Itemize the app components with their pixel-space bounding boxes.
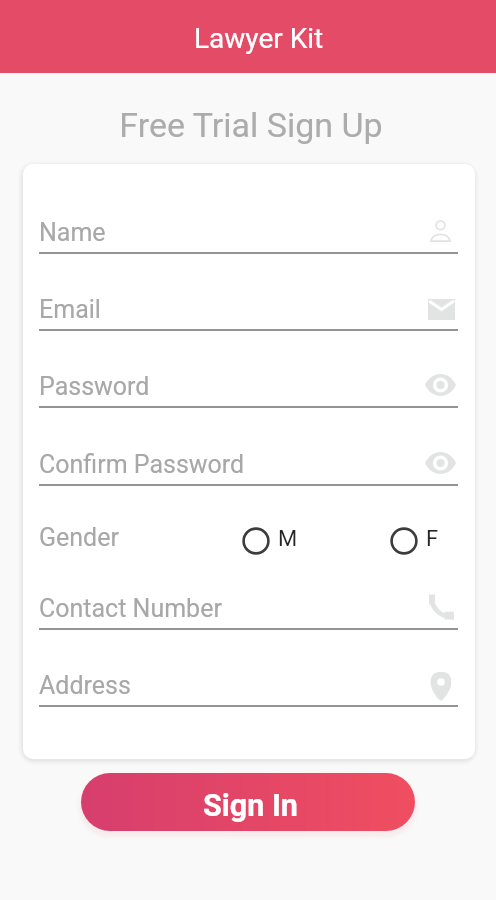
staticText: Password: [39, 372, 150, 401]
button[interactable]: Sign In: [81, 773, 415, 831]
staticText: Free Trial Sign Up: [3, 105, 496, 145]
button[interactable]: Name: [39, 203, 458, 267]
staticText: F: [426, 526, 439, 552]
staticText: Sign In: [203, 788, 298, 824]
button[interactable]: Confirm Password: [39, 435, 458, 499]
other: Email: [428, 299, 455, 320]
other: Location: [431, 672, 451, 701]
staticText: Lawyer Kit: [194, 22, 324, 55]
button[interactable]: Contact Number: [39, 579, 458, 643]
staticText: Name: [39, 218, 106, 247]
button[interactable]: Password: [39, 357, 458, 421]
other: Call: [428, 594, 455, 620]
staticText: Contact Number: [39, 594, 222, 623]
other: Show password: [425, 374, 456, 396]
staticText: Confirm Password: [39, 450, 245, 479]
button[interactable]: F: [384, 521, 446, 561]
staticText: Gender: [39, 523, 119, 552]
other: Name: [430, 220, 451, 242]
staticText: M: [278, 526, 298, 552]
button[interactable]: Address: [39, 656, 458, 720]
staticText: Email: [39, 295, 101, 324]
other: Show password: [425, 452, 456, 474]
staticText: Address: [39, 671, 131, 700]
button[interactable]: M: [236, 521, 298, 561]
button[interactable]: Email: [39, 280, 458, 344]
